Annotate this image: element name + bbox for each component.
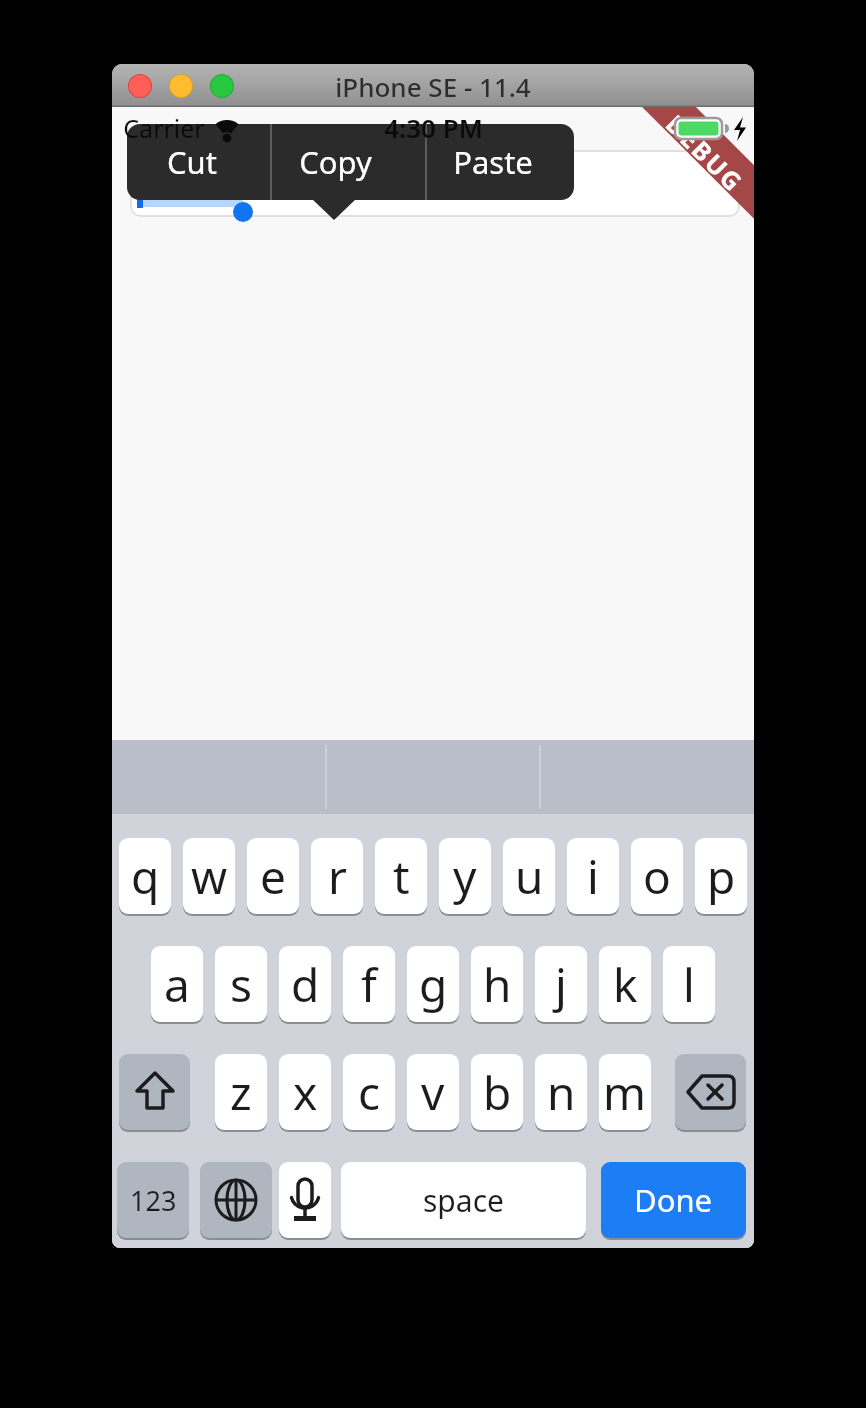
button[interactable]: a xyxy=(151,946,203,1022)
button[interactable]: k xyxy=(599,946,651,1022)
staticText: e xyxy=(260,845,286,908)
button[interactable] xyxy=(200,1162,272,1238)
button[interactable]: 123 xyxy=(117,1162,189,1238)
staticText: DEBUG xyxy=(659,107,751,199)
staticText: Paste xyxy=(453,141,533,183)
staticText: t xyxy=(393,845,410,908)
button[interactable] xyxy=(130,150,740,217)
staticText: Copy xyxy=(299,141,372,183)
staticText: n xyxy=(547,1061,576,1124)
staticText: i xyxy=(587,845,599,908)
staticText: l xyxy=(683,953,695,1016)
staticText: h xyxy=(483,953,512,1016)
staticText: o xyxy=(643,845,671,908)
staticText: x xyxy=(293,1061,318,1124)
staticText: Done xyxy=(634,1179,713,1221)
staticText: s xyxy=(230,953,253,1016)
button[interactable]: Done xyxy=(601,1162,746,1238)
button[interactable]: f xyxy=(343,946,395,1022)
staticText: z xyxy=(230,1061,252,1124)
button[interactable]: i xyxy=(567,838,619,914)
button[interactable]: e xyxy=(247,838,299,914)
button[interactable] xyxy=(675,1054,746,1130)
staticText: d xyxy=(291,953,320,1016)
staticText: iPhone SE - 11.4 xyxy=(335,69,531,104)
button[interactable]: c xyxy=(343,1054,395,1130)
button[interactable]: r xyxy=(311,838,363,914)
button[interactable]: g xyxy=(407,946,459,1022)
button[interactable]: q xyxy=(119,838,171,914)
button[interactable]: m xyxy=(599,1054,651,1130)
button[interactable] xyxy=(279,1162,331,1238)
button[interactable]: s xyxy=(215,946,267,1022)
button[interactable]: h xyxy=(471,946,523,1022)
button[interactable]: o xyxy=(631,838,683,914)
staticText: 123 xyxy=(130,1182,177,1219)
staticText: u xyxy=(515,845,544,908)
button[interactable]: j xyxy=(535,946,587,1022)
button[interactable]: x xyxy=(279,1054,331,1130)
staticText: c xyxy=(358,1061,381,1124)
button[interactable]: y xyxy=(439,838,491,914)
button[interactable]: w xyxy=(183,838,235,914)
staticText: w xyxy=(191,845,228,908)
button[interactable] xyxy=(127,124,270,200)
staticText: r xyxy=(328,845,347,908)
button[interactable]: t xyxy=(375,838,427,914)
button[interactable]: p xyxy=(695,838,747,914)
staticText: m xyxy=(603,1061,647,1124)
staticText: q xyxy=(131,845,160,908)
button[interactable]: u xyxy=(503,838,555,914)
button[interactable]: n xyxy=(535,1054,587,1130)
staticText: space xyxy=(423,1180,504,1221)
staticText: p xyxy=(707,845,736,908)
staticText: g xyxy=(419,953,448,1016)
button[interactable]: z xyxy=(215,1054,267,1130)
button[interactable] xyxy=(119,1054,190,1130)
staticText: y xyxy=(453,845,477,908)
staticText: 4:30 PM xyxy=(384,110,483,145)
button[interactable]: l xyxy=(663,946,715,1022)
staticText: v xyxy=(421,1061,445,1124)
button[interactable]: space xyxy=(341,1162,586,1238)
staticText: a xyxy=(164,953,190,1016)
staticText: b xyxy=(483,1061,512,1124)
staticText: k xyxy=(613,953,638,1016)
button[interactable]: d xyxy=(279,946,331,1022)
button[interactable] xyxy=(272,124,425,200)
button[interactable]: b xyxy=(471,1054,523,1130)
button[interactable] xyxy=(427,124,574,200)
staticText: j xyxy=(555,953,567,1016)
button[interactable]: v xyxy=(407,1054,459,1130)
staticText: Carrier xyxy=(123,111,205,145)
staticText: Cut xyxy=(167,141,217,183)
staticText: f xyxy=(361,953,377,1016)
